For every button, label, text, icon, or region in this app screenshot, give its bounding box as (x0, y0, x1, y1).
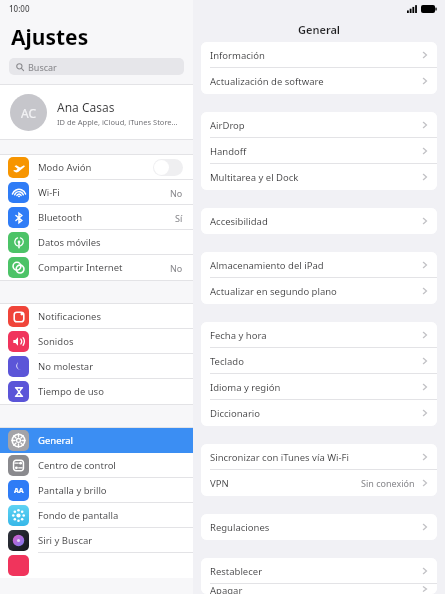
button[interactable]: Diccionario (201, 400, 437, 426)
button[interactable]: Notificaciones (0, 304, 193, 329)
staticText: Fondo de pantalla (38, 509, 119, 522)
staticText: 10:00 (9, 3, 30, 14)
staticText: AA (14, 486, 24, 496)
staticText: Tiempo de uso (38, 385, 104, 398)
staticText: Modo Avión (38, 161, 92, 174)
button[interactable]: Datos móviles (0, 230, 193, 255)
staticText: Sincronizar con iTunes vía Wi-Fi (210, 451, 349, 464)
staticText: No molestar (38, 360, 94, 373)
staticText: Buscar (28, 61, 57, 73)
staticText: AC (21, 105, 37, 121)
staticText: Sin conexión (361, 477, 415, 489)
staticText: General (38, 434, 74, 447)
staticText: Restablecer (210, 565, 263, 578)
button[interactable]: Sonidos (0, 329, 193, 354)
staticText: Compartir Internet (38, 261, 123, 274)
staticText: VPN (210, 477, 229, 490)
button[interactable]: Modo Avión (0, 155, 193, 180)
button[interactable] (0, 553, 193, 578)
staticText: Actualización de software (210, 75, 324, 88)
button[interactable]: Buscar (9, 58, 184, 75)
staticText: Handoff (210, 145, 247, 158)
staticText: Datos móviles (38, 236, 101, 249)
button[interactable]: General (0, 428, 193, 453)
button[interactable]: Teclado (201, 348, 437, 374)
button[interactable]: Regulaciones (201, 514, 437, 540)
button[interactable]: Tiempo de uso (0, 379, 193, 404)
staticText: Fecha y hora (210, 329, 267, 342)
staticText: Sonidos (38, 335, 74, 348)
button[interactable]: Almacenamiento del iPad (201, 252, 437, 278)
button[interactable]: Idioma y región (201, 374, 437, 400)
button[interactable]: Sincronizar con iTunes vía Wi-Fi (201, 444, 437, 470)
staticText: Multitarea y el Dock (210, 171, 299, 184)
button[interactable]: Restablecer (201, 558, 437, 584)
button[interactable]: No molestar (0, 354, 193, 379)
staticText: Actualizar en segundo plano (210, 285, 337, 298)
staticText: Diccionario (210, 407, 261, 420)
button[interactable]: Fecha y hora (201, 322, 437, 348)
button[interactable]: Handoff (201, 138, 437, 164)
staticText: Accesibilidad (210, 215, 268, 228)
button[interactable]: AA (0, 478, 193, 503)
staticText: Siri y Buscar (38, 534, 93, 547)
button[interactable]: AC (0, 85, 193, 140)
staticText: Centro de control (38, 459, 116, 472)
button[interactable]: Siri y Buscar (0, 528, 193, 553)
staticText: No (170, 187, 183, 199)
button[interactable]: Información (201, 42, 437, 68)
button[interactable]: Actualizar en segundo plano (201, 278, 437, 304)
button[interactable]: Multitarea y el Dock (201, 164, 437, 190)
button[interactable]: Actualización de software (201, 68, 437, 94)
staticText: Wi-Fi (38, 186, 60, 199)
button[interactable]: Modo Avión (153, 159, 183, 176)
button[interactable]: Bluetooth (0, 205, 193, 230)
button[interactable]: Apagar (201, 584, 437, 594)
staticText: Sí (175, 212, 183, 224)
button[interactable]: Centro de control (0, 453, 193, 478)
staticText: Almacenamiento del iPad (210, 259, 324, 272)
staticText: ID de Apple, iCloud, iTunes Store... (57, 117, 178, 127)
staticText: Regulaciones (210, 521, 270, 534)
button[interactable]: Fondo de pantalla (0, 503, 193, 528)
staticText: Notificaciones (38, 310, 101, 323)
button[interactable]: VPN (201, 470, 437, 496)
staticText: Ajustes (11, 23, 89, 52)
staticText: Pantalla y brillo (38, 484, 107, 497)
staticText: Información (210, 49, 265, 62)
button[interactable]: Wi-Fi (0, 180, 193, 205)
staticText: No (170, 262, 183, 274)
staticText: AirDrop (210, 119, 245, 132)
button[interactable]: Accesibilidad (201, 208, 437, 234)
staticText: General (298, 22, 340, 37)
staticText: Bluetooth (38, 211, 83, 224)
staticText: Teclado (210, 355, 244, 368)
button[interactable]: Compartir Internet (0, 255, 193, 280)
staticText: Apagar (210, 584, 243, 594)
staticText: Ana Casas (57, 99, 115, 115)
staticText: Idioma y región (210, 381, 281, 394)
button[interactable]: AirDrop (201, 112, 437, 138)
